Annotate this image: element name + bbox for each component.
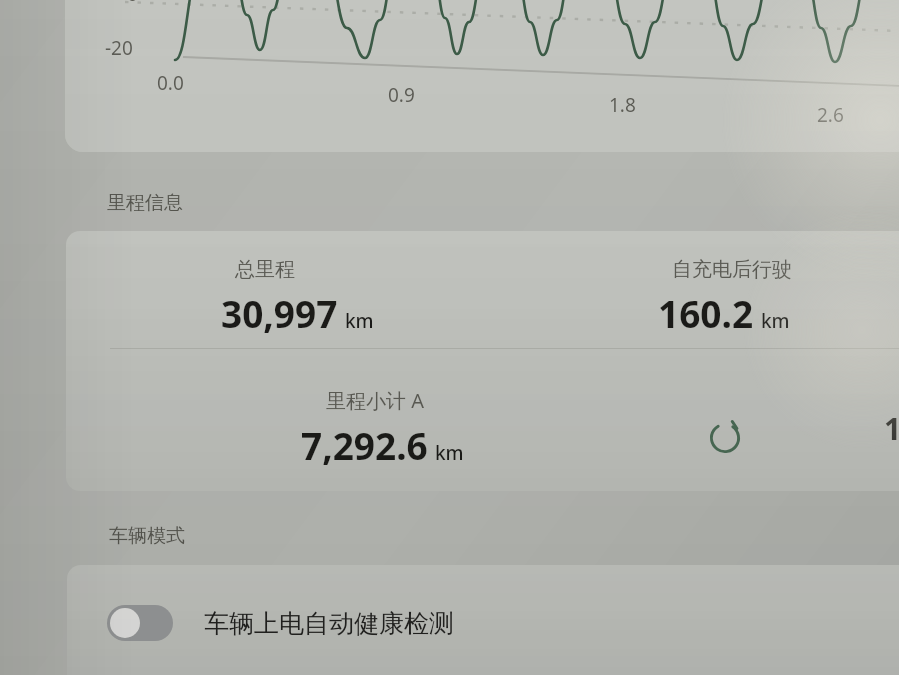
staticText: 1 <box>884 408 899 449</box>
staticText: km <box>761 308 790 334</box>
staticText: km <box>345 308 374 334</box>
staticText: 0.9 <box>388 82 415 108</box>
button[interactable]: 车辆上电自动健康检测 <box>107 592 454 654</box>
button[interactable]: Reset trip meter <box>686 399 764 477</box>
staticText: 车辆上电自动健康检测 <box>204 608 454 639</box>
staticText: 自充电后行驶 <box>672 257 792 282</box>
staticText: 里程小计 A <box>326 387 424 414</box>
staticText: -20 <box>105 35 133 61</box>
button[interactable]: 0 <box>65 0 899 152</box>
staticText: 1.8 <box>609 92 636 118</box>
staticText: 0 <box>127 0 138 7</box>
staticText: 车辆模式 <box>109 524 185 548</box>
staticText: 2.6 <box>817 102 844 128</box>
staticText: 7,292.6 <box>301 420 428 470</box>
staticText: 总里程 <box>235 257 295 282</box>
staticText: 30,997 <box>221 288 338 338</box>
staticText: 160.2 <box>658 288 754 338</box>
staticText: 里程信息 <box>107 191 183 215</box>
staticText: 0.0 <box>157 70 184 96</box>
staticText: km <box>435 440 464 466</box>
